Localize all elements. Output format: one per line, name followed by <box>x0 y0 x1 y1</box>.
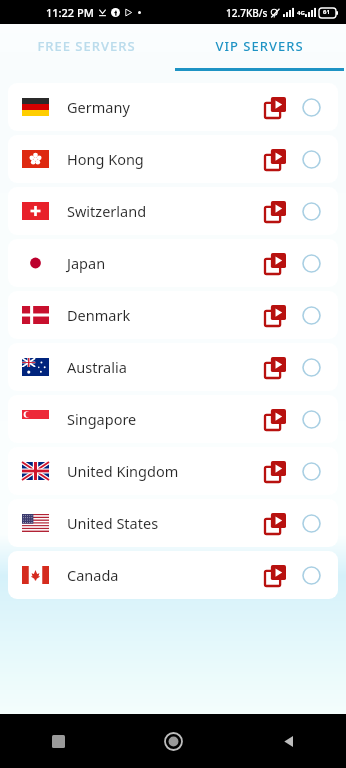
button[interactable]: Watch ad video <box>262 562 288 588</box>
button[interactable]: Select Germany server <box>298 94 324 120</box>
button[interactable]: Select United States server <box>298 510 324 536</box>
staticText: Switzerland <box>67 201 147 221</box>
staticText: 11:22 PM <box>46 5 94 20</box>
button[interactable]: Australia <box>8 343 338 391</box>
staticText: United States <box>67 513 159 533</box>
button[interactable]: Watch ad video <box>262 354 288 380</box>
staticText: VIP SERVERS <box>215 37 304 55</box>
button[interactable]: Watch ad video <box>262 406 288 432</box>
button[interactable]: United Kingdom <box>8 447 338 495</box>
button[interactable]: Select Canada server <box>298 562 324 588</box>
button[interactable]: Select Australia server <box>298 354 324 380</box>
staticText: Singapore <box>67 409 137 429</box>
button[interactable]: Watch ad video <box>262 510 288 536</box>
staticText: Hong Kong <box>67 149 144 169</box>
staticText: Germany <box>67 97 130 117</box>
staticText: 12.7KB/s <box>226 6 268 20</box>
button[interactable]: Watch ad video <box>262 250 288 276</box>
staticText: FREE SERVERS <box>37 37 136 55</box>
button[interactable]: Canada <box>8 551 338 599</box>
staticText: United Kingdom <box>67 461 179 481</box>
button[interactable]: Home <box>116 714 231 768</box>
button[interactable]: Select Switzerland server <box>298 198 324 224</box>
button[interactable]: Recent apps <box>0 714 116 768</box>
button[interactable]: United States <box>8 499 338 547</box>
button[interactable]: Japan <box>8 239 338 287</box>
button[interactable]: FREE SERVERS <box>0 24 173 68</box>
staticText: Denmark <box>67 305 131 325</box>
button[interactable]: Select Hong Kong server <box>298 146 324 172</box>
staticText: 4G <box>297 9 305 17</box>
button[interactable]: Back <box>231 714 346 768</box>
button[interactable]: Watch ad video <box>262 198 288 224</box>
button[interactable]: Switzerland <box>8 187 338 235</box>
staticText: Australia <box>67 357 127 377</box>
button[interactable]: VIP SERVERS <box>173 24 346 68</box>
button[interactable]: Watch ad video <box>262 458 288 484</box>
staticText: Canada <box>67 565 119 585</box>
button[interactable]: Select Japan server <box>298 250 324 276</box>
button[interactable]: Select Singapore server <box>298 406 324 432</box>
button[interactable]: Watch ad video <box>262 146 288 172</box>
button[interactable]: Denmark <box>8 291 338 339</box>
button[interactable]: Hong Kong <box>8 135 338 183</box>
button[interactable]: Germany <box>8 83 338 131</box>
button[interactable]: Select Denmark server <box>298 302 324 328</box>
button[interactable]: Singapore <box>8 395 338 443</box>
button[interactable]: Watch ad video <box>262 94 288 120</box>
button[interactable]: Watch ad video <box>262 302 288 328</box>
staticText: 61 <box>323 8 330 16</box>
button[interactable]: Select United Kingdom server <box>298 458 324 484</box>
staticText: Japan <box>67 253 106 273</box>
